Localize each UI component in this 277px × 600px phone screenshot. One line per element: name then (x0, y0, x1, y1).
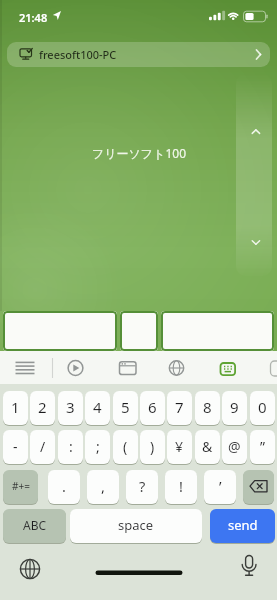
button[interactable]: #+= (3, 470, 38, 504)
button[interactable] (120, 311, 158, 351)
button[interactable]: ¥ (167, 430, 192, 464)
staticText: #+= (12, 479, 30, 493)
button[interactable]: @ (222, 430, 247, 464)
staticText: : (69, 437, 73, 456)
staticText: ¥ (175, 437, 184, 456)
button[interactable] (16, 555, 44, 583)
staticText: ; (96, 437, 100, 456)
staticText: - (13, 437, 18, 456)
staticText: @ (228, 437, 241, 456)
button[interactable] (3, 311, 117, 351)
staticText: ! (179, 476, 183, 496)
button[interactable]: ’ (204, 470, 236, 504)
button[interactable]: : (58, 430, 83, 464)
staticText: send (228, 516, 258, 534)
staticText: 0 (258, 397, 267, 417)
button[interactable] (211, 354, 239, 382)
button[interactable]: . (48, 470, 80, 504)
staticText: 21:48 (19, 10, 48, 25)
staticText: freesoft100-PC (39, 47, 117, 62)
staticText: 1 (11, 397, 20, 417)
staticText: ’ (219, 476, 222, 496)
button[interactable] (235, 553, 263, 581)
button[interactable]: ! (165, 470, 197, 504)
staticText: ( (123, 437, 128, 456)
button[interactable] (62, 354, 90, 382)
button[interactable]: 2 (30, 391, 55, 425)
staticText: 5 (121, 397, 130, 417)
button[interactable]: & (195, 430, 220, 464)
staticText: & (202, 437, 213, 456)
button[interactable] (161, 354, 189, 382)
staticText: . (62, 476, 66, 496)
button[interactable]: - (3, 430, 28, 464)
button[interactable]: 9 (222, 391, 247, 425)
staticText: ” (260, 437, 266, 456)
button[interactable]: 8 (195, 391, 220, 425)
staticText: , (101, 476, 105, 496)
button[interactable]: 1 (3, 391, 28, 425)
button[interactable]: ; (85, 430, 110, 464)
staticText: ? (139, 476, 146, 496)
staticText: 7 (175, 397, 184, 417)
staticText: 6 (148, 397, 157, 417)
button[interactable]: / (30, 430, 55, 464)
button[interactable]: space (70, 509, 202, 543)
button[interactable]: 0 (250, 391, 275, 425)
button[interactable]: ABC (3, 509, 66, 543)
button[interactable]: , (87, 470, 119, 504)
staticText: 3 (66, 397, 75, 417)
staticText: space (118, 516, 154, 534)
button[interactable]: 6 (140, 391, 165, 425)
button[interactable]: 7 (167, 391, 192, 425)
button[interactable]: freesoft100-PC (7, 42, 270, 67)
button[interactable]: ” (250, 430, 275, 464)
button[interactable]: ( (113, 430, 138, 464)
staticText: 9 (230, 397, 239, 417)
button[interactable]: ? (126, 470, 158, 504)
staticText: 2 (38, 397, 47, 417)
button[interactable] (236, 74, 272, 276)
staticText: / (40, 437, 46, 456)
staticText: 4 (93, 397, 102, 417)
staticText: ) (150, 437, 155, 456)
button[interactable]: 5 (113, 391, 138, 425)
button[interactable]: 4 (85, 391, 110, 425)
button[interactable]: ) (140, 430, 165, 464)
button[interactable]: send (210, 509, 275, 543)
button[interactable] (243, 470, 274, 504)
staticText: ABC (23, 517, 47, 533)
staticText: フリーソフト100 (92, 145, 186, 161)
staticText: 8 (203, 397, 212, 417)
button[interactable] (111, 354, 139, 382)
button[interactable] (161, 311, 274, 351)
button[interactable]: 3 (58, 391, 83, 425)
button[interactable] (11, 354, 39, 382)
